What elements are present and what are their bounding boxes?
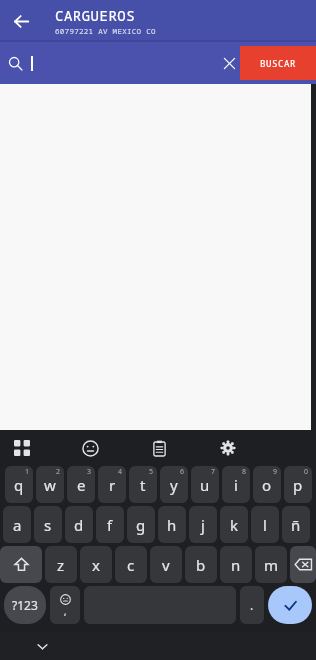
staticText: c <box>127 555 135 575</box>
staticText: l <box>263 515 267 535</box>
button[interactable]: BUSCAR <box>240 46 316 80</box>
button[interactable]: n <box>220 546 252 583</box>
staticText: CARGUEROS <box>55 6 136 25</box>
staticText: v <box>162 555 170 575</box>
staticText: w <box>44 475 56 495</box>
staticText: a <box>13 515 22 535</box>
staticText: 0 <box>304 467 309 477</box>
button[interactable]: a <box>3 506 31 543</box>
staticText: e <box>77 475 86 495</box>
staticText: q <box>14 475 24 495</box>
staticText: p <box>293 475 303 495</box>
staticText: h <box>167 515 177 535</box>
button[interactable]: j <box>189 506 217 543</box>
button[interactable]: Back <box>6 6 36 36</box>
staticText: g <box>136 515 146 535</box>
button[interactable]: Backspace <box>290 546 316 583</box>
staticText: 4 <box>118 467 123 477</box>
button[interactable]: i <box>222 466 250 503</box>
button[interactable]: o <box>253 466 281 503</box>
button[interactable]: e <box>67 466 95 503</box>
button[interactable]: r <box>98 466 126 503</box>
button[interactable]: q <box>5 466 33 503</box>
button[interactable]: g <box>127 506 155 543</box>
button[interactable]: v <box>150 546 182 583</box>
button[interactable]: Clipboard <box>143 432 175 464</box>
staticText: f <box>107 515 113 535</box>
button[interactable]: s <box>34 506 62 543</box>
button[interactable]: t <box>129 466 157 503</box>
staticText: s <box>44 515 52 535</box>
staticText: z <box>57 555 65 575</box>
staticText: . <box>250 597 254 613</box>
button[interactable]: Enter <box>268 586 312 624</box>
staticText: x <box>92 555 100 575</box>
staticText: 7 <box>211 467 216 477</box>
staticText: u <box>200 475 210 495</box>
staticText: 5 <box>149 467 154 477</box>
button[interactable]: c <box>115 546 147 583</box>
button[interactable]: Emoji <box>74 432 106 464</box>
button[interactable]: z <box>45 546 77 583</box>
button[interactable]: x <box>80 546 112 583</box>
button[interactable]: Settings <box>212 432 244 464</box>
button[interactable]: k <box>220 506 248 543</box>
staticText: ?123 <box>12 597 38 613</box>
staticText: r <box>109 475 116 495</box>
staticText: 9 <box>273 467 278 477</box>
button[interactable]: y <box>160 466 188 503</box>
button[interactable]: . <box>240 586 264 624</box>
staticText: 60797221 AV MEXICO CO <box>55 26 156 36</box>
button[interactable]: Apps <box>6 432 38 464</box>
staticText: i <box>234 475 238 495</box>
staticText: m <box>264 555 279 575</box>
button[interactable]: Emoji comma <box>50 586 80 624</box>
button[interactable]: m <box>255 546 287 583</box>
button[interactable]: ñ <box>282 506 310 543</box>
staticText: 1 <box>25 467 30 477</box>
staticText: 2 <box>56 467 61 477</box>
button[interactable]: l <box>251 506 279 543</box>
staticText: b <box>196 555 206 575</box>
button[interactable]: Search <box>2 50 28 76</box>
button[interactable]: Shift <box>0 546 42 583</box>
staticText: t <box>140 475 146 495</box>
staticText: k <box>230 515 239 535</box>
staticText: y <box>170 475 178 495</box>
button[interactable]: d <box>65 506 93 543</box>
staticText: BUSCAR <box>260 57 297 69</box>
staticText: j <box>201 515 205 535</box>
button[interactable]: f <box>96 506 124 543</box>
staticText: d <box>74 515 84 535</box>
staticText: n <box>231 555 241 575</box>
staticText: 8 <box>242 467 247 477</box>
staticText: 3 <box>87 467 92 477</box>
button[interactable]: Clear <box>215 49 243 77</box>
button[interactable]: ?123 <box>4 586 46 624</box>
staticText: o <box>262 475 272 495</box>
button[interactable]: h <box>158 506 186 543</box>
button[interactable]: b <box>185 546 217 583</box>
staticText: , <box>64 605 67 617</box>
button[interactable]: p <box>284 466 312 503</box>
staticText: ñ <box>291 515 301 535</box>
button[interactable]: u <box>191 466 219 503</box>
button[interactable]: Hide keyboard <box>28 632 56 660</box>
staticText: 6 <box>180 467 185 477</box>
button[interactable]: w <box>36 466 64 503</box>
